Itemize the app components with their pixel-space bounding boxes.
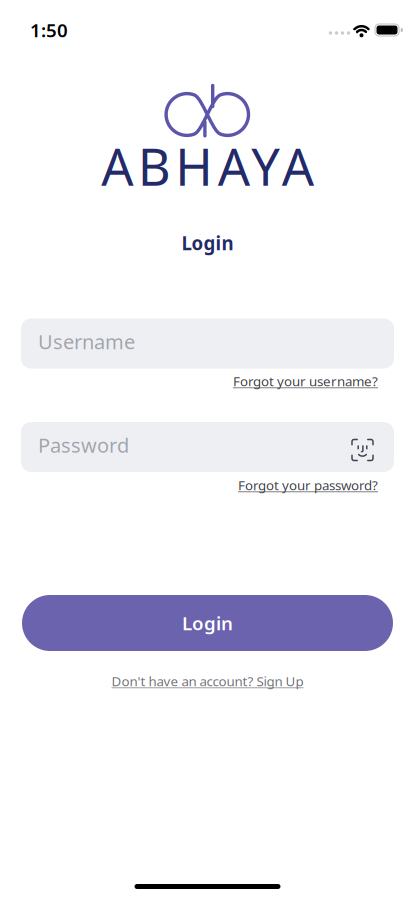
button[interactable]: Username [21, 318, 394, 368]
staticText: Password [38, 432, 129, 458]
staticText: Login [181, 231, 233, 255]
staticText: 1:50 [30, 18, 68, 42]
button[interactable]: Don't have an account? Sign Up [111, 672, 303, 690]
staticText: Don't have an account? Sign Up [111, 672, 303, 690]
button[interactable]: Login [22, 595, 393, 651]
button[interactable]: Forgot your username? [233, 372, 378, 390]
staticText: Forgot your username? [233, 372, 378, 390]
staticText: Username [38, 328, 135, 355]
staticText: Forgot your password? [238, 476, 378, 494]
button[interactable]: Forgot your password? [238, 476, 378, 494]
staticText: ABHAYA [101, 132, 314, 200]
staticText: Login [182, 611, 233, 635]
button[interactable]: Password [21, 422, 394, 472]
